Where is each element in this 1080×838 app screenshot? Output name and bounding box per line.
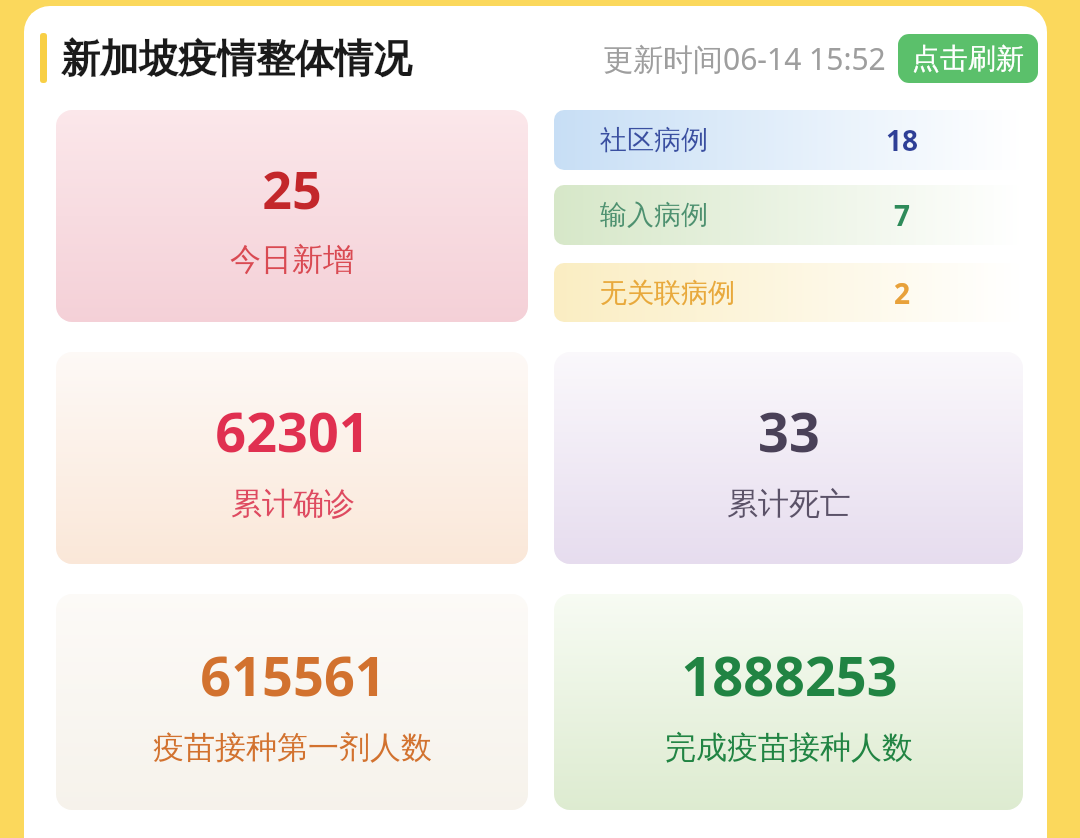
staticText: 输入病例 [600,198,708,232]
staticText: 社区病例 [600,123,708,157]
button[interactable]: 1888253 [554,594,1023,810]
staticText: 点击刷新 [912,41,1024,76]
staticText: 25 [262,153,322,224]
staticText: 615561 [200,638,386,712]
staticText: 2 [894,274,911,312]
staticText: 7 [894,196,911,234]
button[interactable]: 输入病例 [554,185,1023,245]
staticText: 62301 [215,394,370,468]
staticText: 今日新增 [230,240,354,279]
staticText: 新加坡疫情整体情况 [61,34,412,83]
staticText: 33 [758,394,820,468]
staticText: 完成疫苗接种人数 [665,728,913,767]
staticText: 1888253 [681,638,898,712]
staticText: 疫苗接种第一剂人数 [153,728,432,767]
button[interactable]: 无关联病例 [554,263,1023,322]
button[interactable]: 点击刷新 [898,34,1038,83]
staticText: 更新时间06-14 15:52 [603,38,886,79]
button[interactable]: 33 [554,352,1023,564]
button[interactable]: 62301 [56,352,528,564]
staticText: 18 [886,121,919,159]
staticText: 累计确诊 [231,484,355,523]
staticText: 无关联病例 [600,276,735,310]
button[interactable]: 25 [56,110,528,322]
staticText: 累计死亡 [727,484,851,523]
button[interactable]: 社区病例 [554,110,1023,170]
button[interactable]: 615561 [56,594,528,810]
